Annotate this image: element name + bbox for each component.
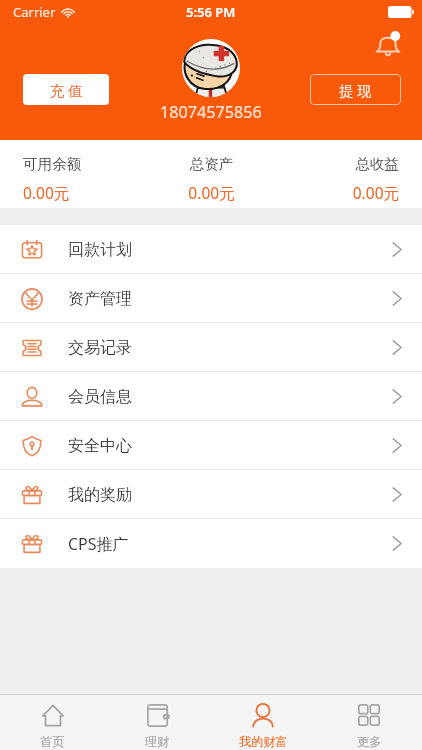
button[interactable]: 提 现 — [310, 74, 401, 105]
button[interactable]: 充 值 — [23, 74, 109, 105]
staticText: 会员信息 — [68, 387, 132, 407]
button[interactable]: Avatar — [182, 39, 240, 97]
staticText: 我的财富 — [239, 734, 288, 749]
button[interactable]: 我的财富 — [210, 695, 316, 750]
button[interactable]: 会员信息 — [0, 372, 422, 421]
staticText: 回款计划 — [68, 240, 132, 260]
staticText: 我的奖励 — [68, 485, 132, 505]
staticText: 0.00元 — [23, 182, 149, 203]
staticText: 交易记录 — [68, 338, 132, 358]
staticText: 0.00元 — [274, 182, 399, 203]
staticText: 总收益 — [274, 155, 399, 173]
button[interactable]: 交易记录 — [0, 323, 422, 372]
staticText: 首页 — [40, 734, 65, 749]
staticText: Carrier — [13, 3, 56, 21]
staticText: 资产管理 — [68, 289, 132, 309]
staticText: 理财 — [145, 734, 170, 749]
button[interactable]: 理财 — [105, 695, 210, 750]
button[interactable]: CPS推广 — [0, 519, 422, 568]
staticText: 18074575856 — [160, 101, 262, 123]
staticText: 充 值 — [50, 80, 83, 100]
button[interactable]: 资产管理 — [0, 274, 422, 323]
staticText: 0.00元 — [149, 182, 274, 203]
staticText: 可用余额 — [23, 155, 149, 173]
staticText: 提 现 — [339, 80, 372, 100]
button[interactable]: 首页 — [0, 695, 105, 750]
button[interactable]: Notifications — [367, 24, 409, 66]
staticText: 更多 — [357, 734, 382, 749]
staticText: 5:56 PM — [186, 3, 236, 21]
button[interactable]: 回款计划 — [0, 225, 422, 274]
staticText: CPS推广 — [68, 533, 129, 555]
staticText: 安全中心 — [68, 436, 132, 456]
button[interactable]: 我的奖励 — [0, 470, 422, 519]
staticText: 总资产 — [149, 155, 274, 173]
button[interactable]: 安全中心 — [0, 421, 422, 470]
button[interactable]: 更多 — [316, 695, 422, 750]
